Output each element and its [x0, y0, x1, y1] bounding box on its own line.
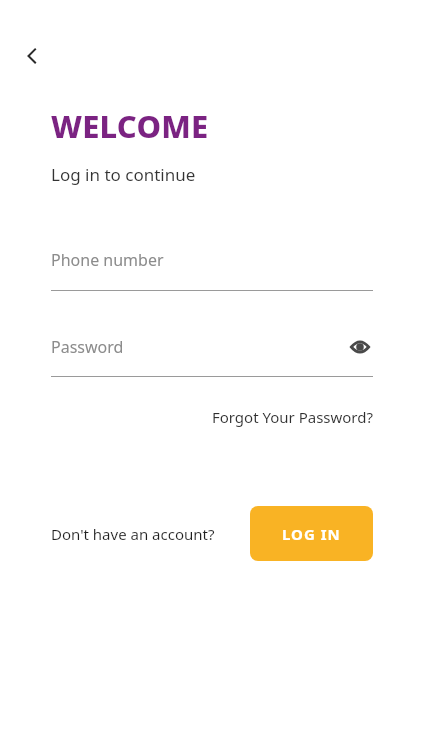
staticText: Phone number	[51, 249, 164, 271]
button[interactable]: Don't have an account?	[51, 524, 215, 544]
staticText: Forgot Your Password?	[211, 407, 373, 427]
button[interactable]: Show password	[347, 334, 373, 360]
button[interactable]: Phone number	[51, 249, 373, 291]
button[interactable]: Password	[51, 336, 347, 358]
staticText: Password	[51, 336, 124, 358]
button[interactable]: LOG IN	[250, 506, 373, 561]
staticText: LOG IN	[282, 524, 341, 544]
staticText: WELCOME	[51, 105, 209, 147]
button[interactable]: Forgot Your Password?	[211, 407, 373, 427]
button[interactable]: Back	[10, 34, 54, 78]
staticText: Don't have an account?	[51, 524, 215, 544]
staticText: Log in to continue	[51, 163, 196, 186]
